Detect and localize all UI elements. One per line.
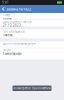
staticText: Новая (3, 17, 12, 20)
staticText: Дата создания заявки (3, 20, 32, 24)
staticText: 21.12.2023 (3, 24, 21, 27)
staticText: Заявка (3, 33, 12, 37)
button[interactable]: Дата создания заявки (0, 20, 64, 26)
staticText: Услуга (3, 48, 10, 52)
staticText: Статус (3, 13, 10, 17)
button[interactable]: Статус (0, 13, 64, 19)
button[interactable]: Заявка №1422 (0, 5, 33, 13)
staticText: Смена тарифа (3, 52, 21, 55)
staticText: Заявка №1422 (6, 6, 31, 12)
button[interactable]: Дополнительные услуги (0, 41, 64, 48)
staticText: Дополнительные услуги (3, 42, 36, 45)
button[interactable]: Услуга (0, 48, 64, 60)
staticText: 9:41 (2, 1, 9, 4)
staticText: Тип обращения (3, 30, 25, 33)
button[interactable]: Тип обращения (0, 29, 64, 38)
button[interactable]: Посмотреть в приложении (12, 85, 51, 91)
staticText: Посмотреть в приложении (13, 86, 51, 90)
